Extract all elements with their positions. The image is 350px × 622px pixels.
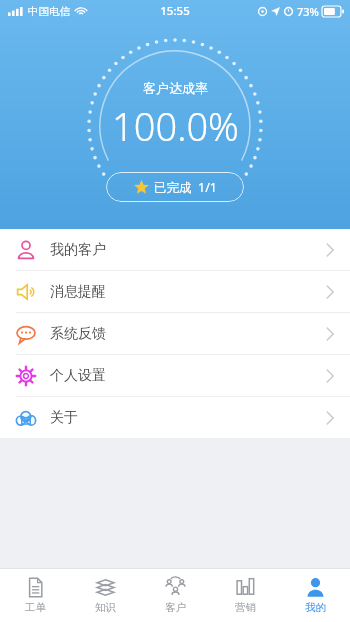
button[interactable]: 系统反馈	[0, 313, 350, 354]
staticText: 客户达成率	[143, 80, 208, 96]
staticText: 客户	[165, 601, 186, 614]
button[interactable]: 知识	[70, 569, 140, 622]
staticText: 我的客户	[50, 241, 106, 259]
button[interactable]: 客户	[140, 569, 210, 622]
button[interactable]: 已完成 1/1	[106, 172, 244, 202]
staticText: 我的	[305, 601, 326, 614]
staticText: 个人设置	[50, 367, 106, 385]
button[interactable]: 我的	[280, 569, 350, 622]
staticText: 工单	[25, 601, 46, 614]
button[interactable]: 我的客户	[0, 229, 350, 270]
staticText: 73%	[297, 4, 319, 19]
staticText: 消息提醒	[50, 283, 106, 301]
staticText: 15:55	[160, 3, 190, 19]
button[interactable]: 个人设置	[0, 355, 350, 396]
staticText: 知识	[95, 601, 116, 614]
staticText: 100.0%	[112, 100, 239, 152]
staticText: 中国电信	[28, 5, 70, 18]
staticText: 已完成 1/1	[154, 179, 217, 196]
staticText: 营销	[235, 601, 256, 614]
button[interactable]: 工单	[0, 569, 70, 622]
staticText: 关于	[50, 409, 78, 427]
staticText: 系统反馈	[50, 325, 106, 343]
button[interactable]: 营销	[210, 569, 280, 622]
button[interactable]: 关于	[0, 397, 350, 438]
button[interactable]: 消息提醒	[0, 271, 350, 312]
